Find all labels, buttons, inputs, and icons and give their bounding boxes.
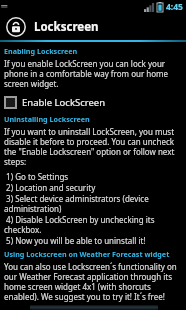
staticText: 1) Go to Settings: [4, 171, 69, 182]
staticText: If you want to uninstall LockScreen, you…: [4, 126, 183, 167]
staticText: 2) Location and security: [4, 182, 96, 193]
staticText: If you enable LockScreen you can lock yo…: [4, 58, 183, 89]
staticText: 4) Disable LockScreen by unchecking its …: [4, 214, 183, 235]
staticText: Uninstalling Lockscreen: [4, 114, 90, 124]
staticText: Enable LockScreen: [22, 96, 106, 109]
staticText: Lockscreen: [34, 19, 99, 35]
staticText: 4:45: [166, 1, 183, 13]
other: App icon: [6, 17, 26, 37]
staticText: 3) Select device administrators (device …: [4, 193, 183, 214]
staticText: You can also use Lockscreen´s functional…: [4, 261, 183, 302]
staticText: Enabling Lockscreen: [4, 46, 78, 56]
staticText: Using Lockscreen on Weather Forecast wid…: [4, 249, 170, 259]
staticText: 5) Now you will be able to uninstall it!: [4, 235, 146, 246]
button[interactable]: App icon: [0, 14, 186, 40]
button[interactable]: Enable LockScreen: [4, 94, 183, 111]
button[interactable]: Advertisement banner: [30, 305, 158, 310]
